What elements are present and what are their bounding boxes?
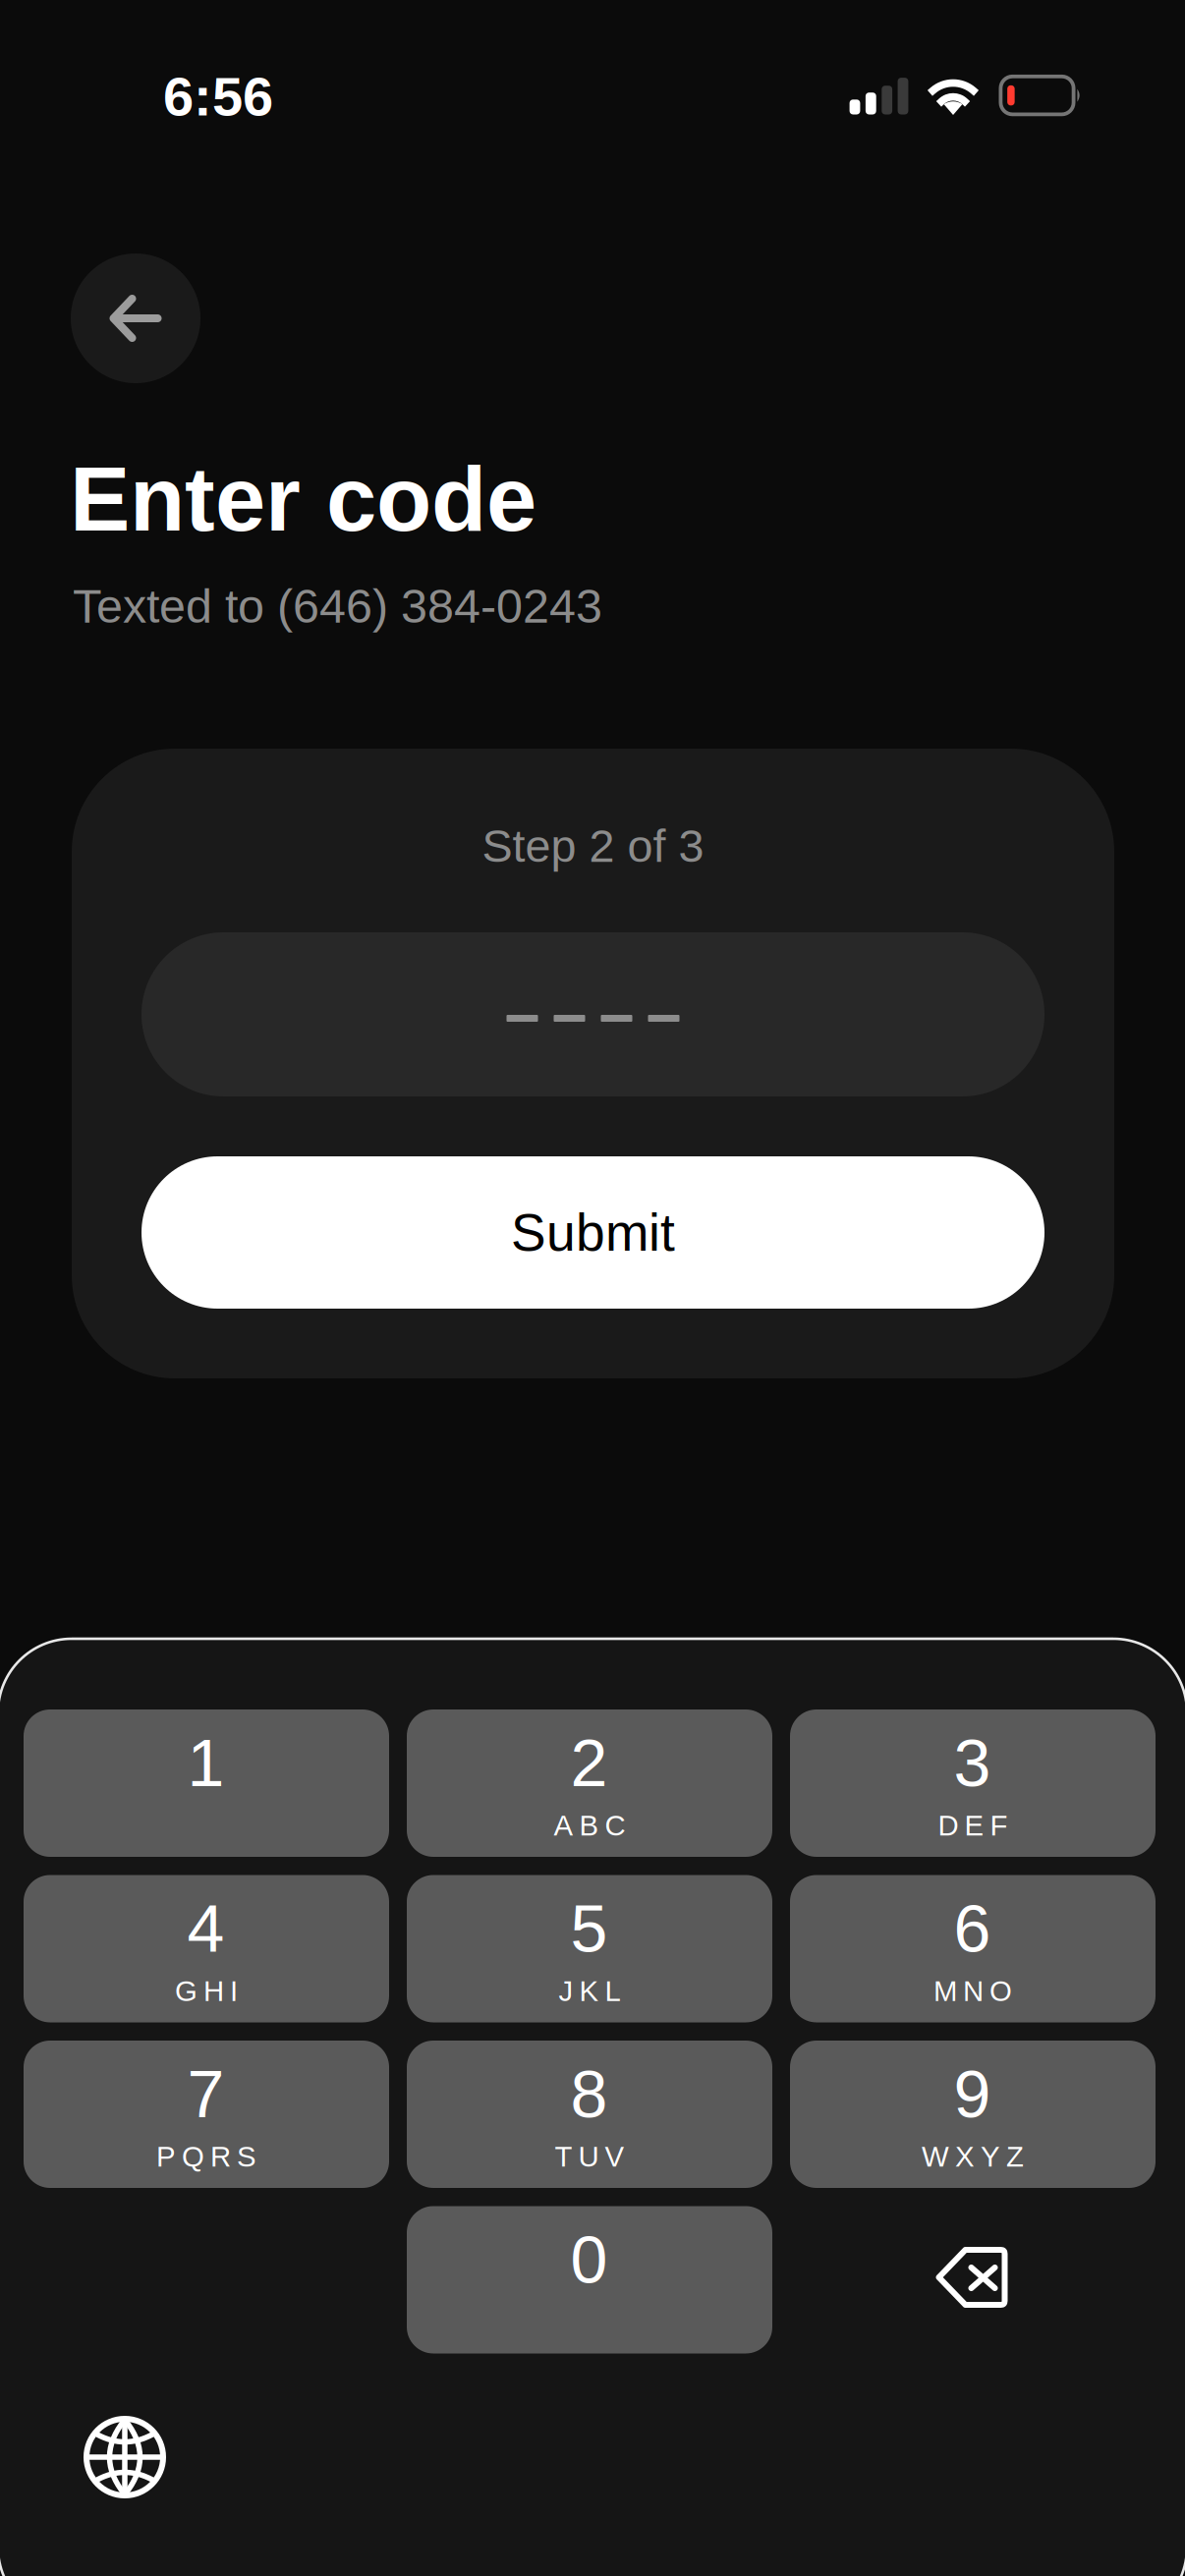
button[interactable]: Switch keyboard xyxy=(86,2419,163,2495)
staticText: 1 xyxy=(187,1726,225,1800)
staticText: 6 xyxy=(954,1891,991,1966)
staticText: 5 xyxy=(570,1891,608,1966)
button[interactable]: Submit xyxy=(141,1156,1044,1309)
staticText: 0 xyxy=(570,2222,608,2297)
button[interactable]: 5 xyxy=(407,1875,772,2022)
staticText: Enter code xyxy=(70,449,536,550)
button[interactable]: 0 xyxy=(407,2206,772,2353)
button[interactable]: 9 xyxy=(790,2041,1156,2188)
staticText: 8 xyxy=(570,2057,608,2131)
button[interactable]: 7 xyxy=(24,2041,389,2188)
button[interactable]: 2 xyxy=(407,1709,772,1857)
button[interactable]: Back xyxy=(71,253,200,383)
staticText: D E F xyxy=(938,1809,1008,1842)
staticText: Step 2 of 3 xyxy=(482,820,704,871)
staticText: T U V xyxy=(555,2140,624,2173)
staticText: Texted to (646) 384-0243 xyxy=(73,580,602,633)
staticText: A B C xyxy=(554,1809,625,1842)
button[interactable]: Delete xyxy=(935,2247,1009,2308)
staticText: 2 xyxy=(570,1726,608,1800)
staticText: 7 xyxy=(187,2057,225,2131)
staticText: 4 xyxy=(187,1891,225,1966)
staticText: J K L xyxy=(559,1975,621,2007)
staticText: G H I xyxy=(175,1975,238,2007)
staticText: 9 xyxy=(954,2057,991,2131)
button[interactable]: 4 xyxy=(24,1875,389,2022)
staticText: 6:56 xyxy=(163,66,273,127)
staticText: 3 xyxy=(954,1726,991,1800)
staticText: Submit xyxy=(511,1203,675,1262)
staticText: M N O xyxy=(933,1975,1012,2007)
button[interactable]: 1 xyxy=(24,1709,389,1857)
staticText: W X Y Z xyxy=(922,2140,1024,2173)
staticText: P Q R S xyxy=(156,2140,256,2173)
button[interactable]: 3 xyxy=(790,1709,1156,1857)
button[interactable]: 6 xyxy=(790,1875,1156,2022)
button[interactable]: 8 xyxy=(407,2041,772,2188)
